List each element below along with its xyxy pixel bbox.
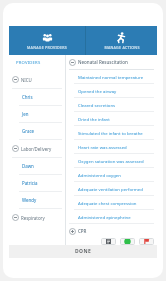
- staticText: Administered epinephrine: [78, 214, 131, 220]
- button[interactable]: Chris: [9, 89, 65, 105]
- button[interactable]: MANAGE ACTIONS: [86, 26, 157, 55]
- staticText: Chris: [22, 94, 33, 100]
- staticText: MANAGE PROVIDERS: [27, 45, 67, 50]
- button[interactable]: Notes: [101, 238, 116, 245]
- button[interactable]: NICU: [9, 71, 65, 88]
- staticText: PROVIDERS: [16, 60, 41, 66]
- staticText: NICU: [21, 77, 32, 83]
- staticText: Dried the infant: [78, 116, 110, 122]
- staticText: Neonatal Resuscitation: [78, 59, 128, 65]
- button[interactable]: Wendy: [9, 192, 65, 208]
- staticText: Labor/Delivery: [21, 146, 52, 152]
- button[interactable]: Adequate chest compression performed: [69, 196, 154, 209]
- staticText: MANAGE ACTIONS: [104, 45, 140, 50]
- staticText: Heart rate was assessed: [78, 144, 127, 150]
- button[interactable]: Stimulated the infant to breathe: [69, 126, 154, 139]
- staticText: Wendy: [22, 197, 37, 203]
- staticText: DONE: [75, 248, 92, 255]
- staticText: Adequate chest compression performed: [78, 200, 154, 206]
- button[interactable]: Grace: [9, 123, 65, 139]
- staticText: Dawn: [22, 163, 34, 169]
- staticText: Patricia: [22, 180, 38, 186]
- button[interactable]: Administered oxygen: [69, 168, 154, 181]
- button[interactable]: Dried the infant: [69, 112, 154, 125]
- staticText: Stimulated the infant to breathe: [78, 130, 143, 136]
- button[interactable]: Neonatal Resuscitation: [69, 55, 154, 69]
- button[interactable]: Administered epinephrine: [69, 210, 154, 223]
- button[interactable]: Adequate ventilation performed: [69, 182, 154, 195]
- button[interactable]: Cleared secretions: [69, 98, 154, 111]
- button[interactable]: Dawn: [9, 158, 65, 174]
- button[interactable]: MANAGE PROVIDERS: [9, 26, 85, 55]
- staticText: Oxygen saturation was assessed: [78, 158, 144, 164]
- button[interactable]: Confirm: [120, 238, 135, 245]
- staticText: Jen: [22, 111, 29, 117]
- button[interactable]: Patricia: [9, 175, 65, 191]
- button[interactable]: Opened the airway: [69, 84, 154, 97]
- staticText: Maintained normal temperature: [78, 74, 144, 80]
- button[interactable]: DONE: [9, 245, 157, 258]
- button[interactable]: Oxygen saturation was assessed: [69, 154, 154, 167]
- button[interactable]: Flag: [139, 238, 154, 245]
- staticText: Adequate ventilation performed: [78, 186, 143, 192]
- button[interactable]: CPR: [69, 224, 154, 238]
- staticText: Grace: [22, 128, 34, 134]
- staticText: Respiratory: [21, 215, 45, 221]
- staticText: Cleared secretions: [78, 102, 116, 108]
- staticText: Opened the airway: [78, 88, 117, 94]
- button[interactable]: Heart rate was assessed: [69, 140, 154, 153]
- button[interactable]: Labor/Delivery: [9, 140, 65, 157]
- staticText: CPR: [78, 228, 87, 234]
- staticText: Administered oxygen: [78, 172, 121, 178]
- button[interactable]: Maintained normal temperature: [69, 70, 154, 83]
- button[interactable]: Respiratory: [9, 209, 65, 226]
- button[interactable]: Jen: [9, 106, 65, 122]
